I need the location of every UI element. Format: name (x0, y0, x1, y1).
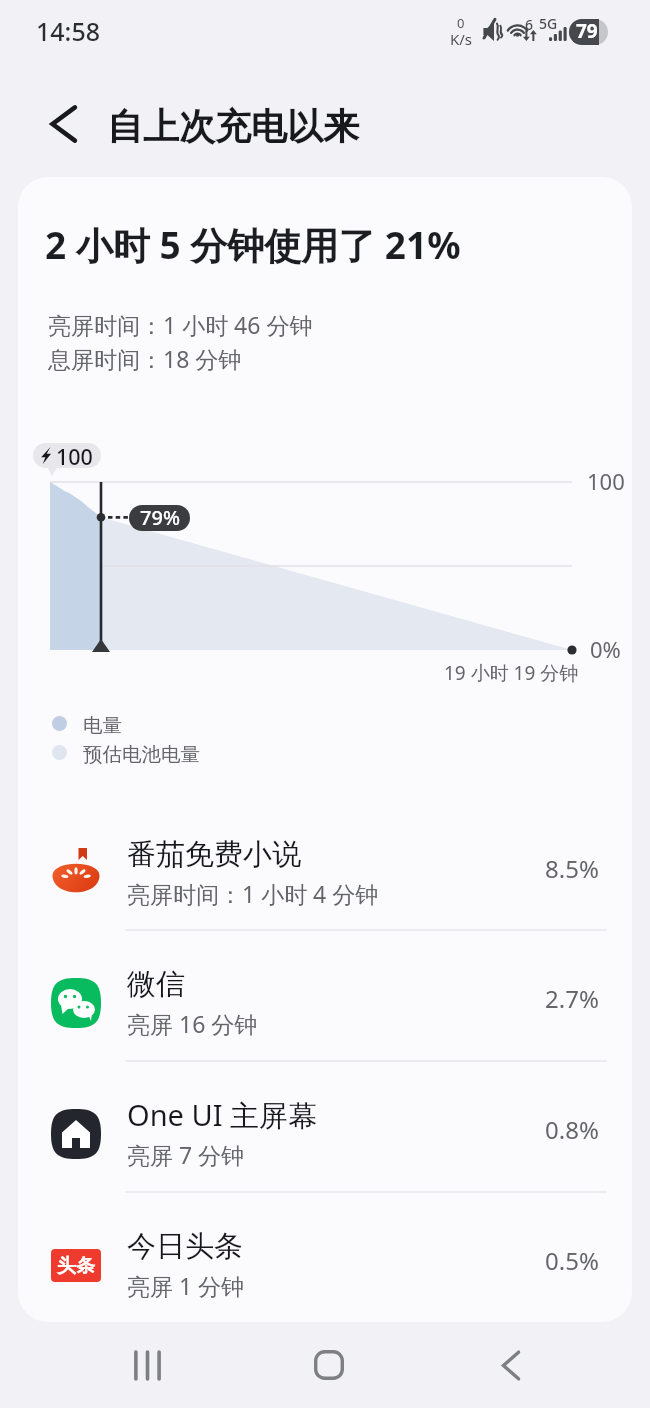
staticText: 0% (590, 634, 621, 664)
staticText: 0.5% (545, 1244, 599, 1277)
staticText: 19 小时 19 分钟 (444, 660, 579, 686)
staticText: 5G (539, 14, 558, 33)
button[interactable]: Back (36, 96, 92, 152)
staticText: 2 小时 5 分钟使用了 21% (45, 219, 461, 270)
button[interactable]: Recent apps (92, 1322, 202, 1408)
button[interactable]: One UI 主屏幕 (18, 1069, 632, 1199)
button[interactable]: 头条 (18, 1200, 632, 1322)
staticText: One UI 主屏幕 (127, 1095, 318, 1135)
staticText: 亮屏 1 分钟 (127, 1270, 245, 1301)
staticText: 14:58 (36, 14, 101, 48)
staticText: 预估电池电量 (83, 742, 200, 767)
staticText: 2.7% (545, 982, 599, 1015)
staticText: 亮屏时间：1 小时 4 分钟 (127, 878, 379, 909)
staticText: 息屏时间：18 分钟 (48, 343, 242, 374)
staticText: 今日头条 (127, 1228, 243, 1265)
staticText: 6 (525, 15, 534, 34)
staticText: 亮屏 16 分钟 (127, 1008, 258, 1039)
staticText: 0.8% (545, 1113, 599, 1146)
staticText: 番茄免费小说 (127, 836, 301, 873)
staticText: 79% (140, 505, 180, 530)
staticText: 电量 (83, 713, 122, 738)
staticText: 8.5% (545, 852, 599, 885)
staticText: 0 (457, 14, 465, 32)
staticText: 微信 (127, 966, 185, 1003)
staticText: 100 (56, 442, 93, 467)
button[interactable]: Back (456, 1322, 566, 1408)
staticText: 100 (587, 466, 625, 496)
staticText: 亮屏时间：1 小时 46 分钟 (48, 309, 313, 340)
staticText: 头条 (57, 1254, 95, 1278)
staticText: 亮屏 7 分钟 (127, 1139, 245, 1170)
staticText: 79 (576, 18, 598, 44)
button[interactable]: 番茄免费小说 (18, 808, 632, 938)
button[interactable]: Home (274, 1322, 384, 1408)
staticText: K/s (450, 29, 473, 49)
staticText: 自上次充电以来 (107, 104, 359, 149)
button[interactable]: 微信 (18, 938, 632, 1068)
